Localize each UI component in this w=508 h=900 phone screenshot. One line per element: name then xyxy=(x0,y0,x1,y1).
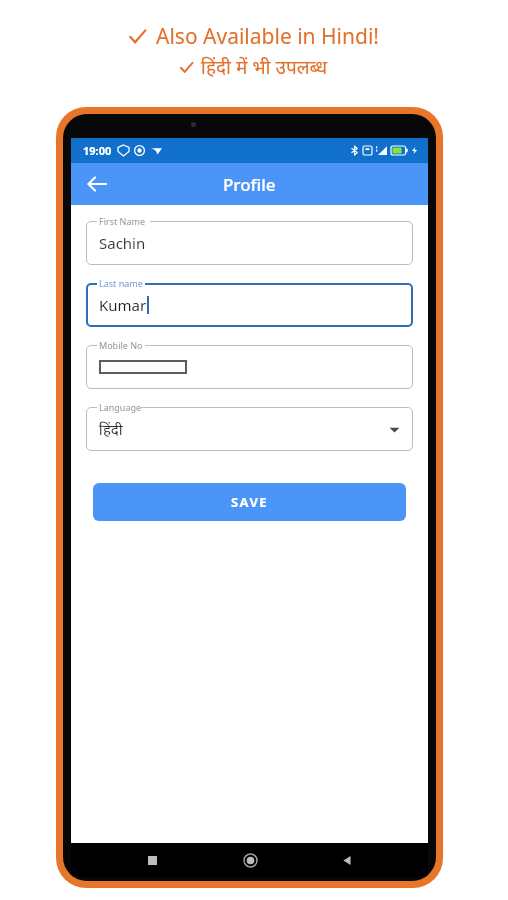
staticText: Also Available in Hindi! xyxy=(156,22,379,51)
staticText: Kumar xyxy=(99,295,147,315)
staticText: हिंदी में भी उपलब्ध xyxy=(201,54,328,80)
button[interactable]: Last name xyxy=(86,279,413,327)
button[interactable]: Home xyxy=(233,843,267,877)
button[interactable]: Back xyxy=(79,166,115,202)
staticText: Sachin xyxy=(99,233,146,253)
staticText: हिंदी xyxy=(99,419,123,439)
button[interactable]: Recent apps xyxy=(135,843,169,877)
staticText: Last name xyxy=(99,277,143,289)
button[interactable]: Language xyxy=(86,403,413,451)
staticText: Mobile No xyxy=(99,339,143,351)
staticText: First Name xyxy=(99,215,145,227)
button[interactable]: First Name xyxy=(86,217,413,265)
button[interactable]: Mobile No xyxy=(86,341,413,389)
staticText: SAVE xyxy=(231,493,268,511)
button[interactable]: SAVE xyxy=(93,483,406,521)
staticText: Language xyxy=(99,401,142,413)
staticText: 19:00 xyxy=(83,143,112,158)
staticText: Profile xyxy=(223,173,276,196)
button[interactable]: Back xyxy=(330,843,364,877)
